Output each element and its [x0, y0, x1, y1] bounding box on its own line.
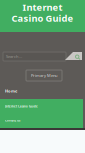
staticText: Internet — [22, 1, 62, 13]
staticText: Search … — [6, 54, 22, 59]
button[interactable]: Contact Us — [0, 113, 83, 127]
staticText: Internet Casino Guide — [5, 105, 38, 108]
button[interactable]: Search — [65, 52, 82, 60]
staticText: Home — [5, 88, 17, 94]
staticText: Primary Menu — [31, 73, 57, 78]
button[interactable]: Internet Casino Guide — [0, 99, 83, 113]
staticText: Contact Us — [5, 119, 20, 122]
staticText: Casino Guide — [11, 12, 73, 24]
button[interactable]: Primary Menu — [26, 70, 62, 81]
